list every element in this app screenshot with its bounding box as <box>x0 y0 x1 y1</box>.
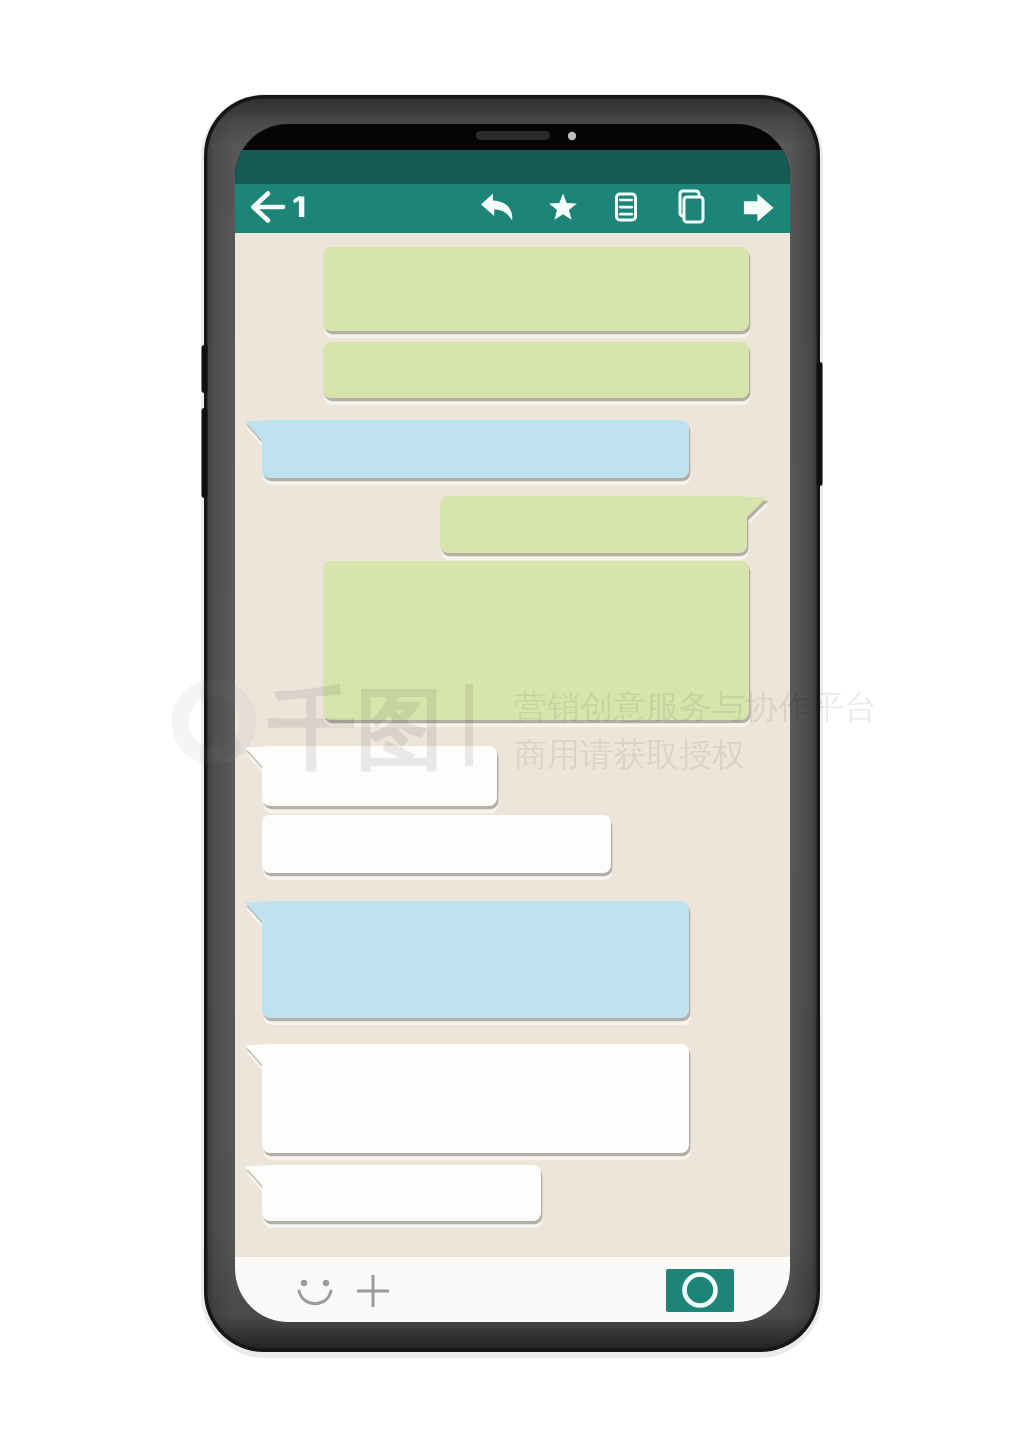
button[interactable]: Message <box>245 900 689 1018</box>
staticText: 商用请获取授权 <box>514 734 745 776</box>
staticText: 营销创意服务与协作平台 <box>514 686 877 728</box>
button[interactable]: Message <box>245 745 497 806</box>
button[interactable]: Add star <box>536 180 590 233</box>
button[interactable]: Message <box>323 561 749 720</box>
button[interactable]: Reply <box>470 180 526 233</box>
button[interactable]: Message <box>245 1043 689 1153</box>
button[interactable]: Attach <box>348 1262 400 1314</box>
button[interactable]: Back <box>243 180 317 233</box>
staticText: 千图 <box>266 676 442 787</box>
button[interactable]: Copy <box>666 180 720 233</box>
button[interactable]: Forward <box>732 180 786 233</box>
button[interactable]: Camera <box>664 1266 736 1315</box>
button[interactable]: Emoji <box>290 1262 342 1314</box>
button[interactable]: Message <box>245 419 689 478</box>
button[interactable]: Message info <box>600 180 654 233</box>
button[interactable]: Message <box>440 496 767 553</box>
button[interactable]: Message <box>245 1164 541 1221</box>
